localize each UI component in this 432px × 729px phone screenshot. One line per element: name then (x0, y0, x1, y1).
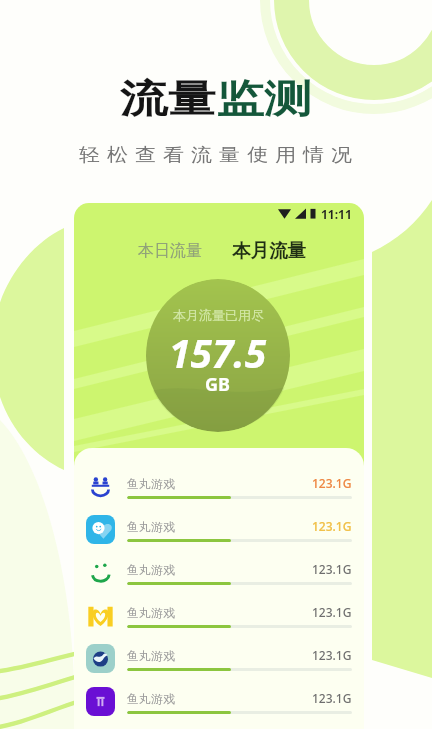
staticText: 11:11 (321, 206, 352, 220)
staticText: GB (205, 372, 231, 397)
staticText: 123.1G (312, 604, 352, 620)
staticText: 流量 (120, 75, 216, 123)
button[interactable]: 鱼丸游戏 (74, 465, 364, 508)
staticText: 123.1G (312, 561, 352, 577)
button[interactable]: 本月流量 (226, 234, 312, 267)
staticText: 本月流量 (232, 239, 306, 262)
staticText: 鱼丸游戏 (127, 562, 175, 577)
staticText: 鱼丸游戏 (127, 476, 175, 491)
button[interactable]: 本日流量 (132, 236, 208, 266)
staticText: 本日流量 (138, 241, 202, 261)
staticText: 监测 (216, 75, 312, 123)
staticText: 鱼丸游戏 (127, 519, 175, 534)
staticText: 鱼丸游戏 (127, 691, 175, 706)
button[interactable]: 鱼丸游戏 (74, 508, 364, 551)
button[interactable]: 鱼丸游戏 (74, 637, 364, 680)
staticText: 本月流量已用尽 (173, 307, 264, 323)
staticText: 123.1G (312, 518, 352, 534)
button[interactable]: 鱼丸游戏 (74, 594, 364, 637)
button[interactable]: 鱼丸游戏 (74, 551, 364, 594)
staticText: 鱼丸游戏 (127, 605, 175, 620)
staticText: 123.1G (312, 475, 352, 491)
staticText: 123.1G (312, 690, 352, 706)
button[interactable]: 鱼丸游戏 (74, 680, 364, 723)
staticText: 123.1G (312, 647, 352, 663)
staticText: 鱼丸游戏 (127, 648, 175, 663)
staticText: 轻松查看流量使用情况 (3, 144, 432, 166)
staticText: 157.5 (169, 326, 267, 379)
